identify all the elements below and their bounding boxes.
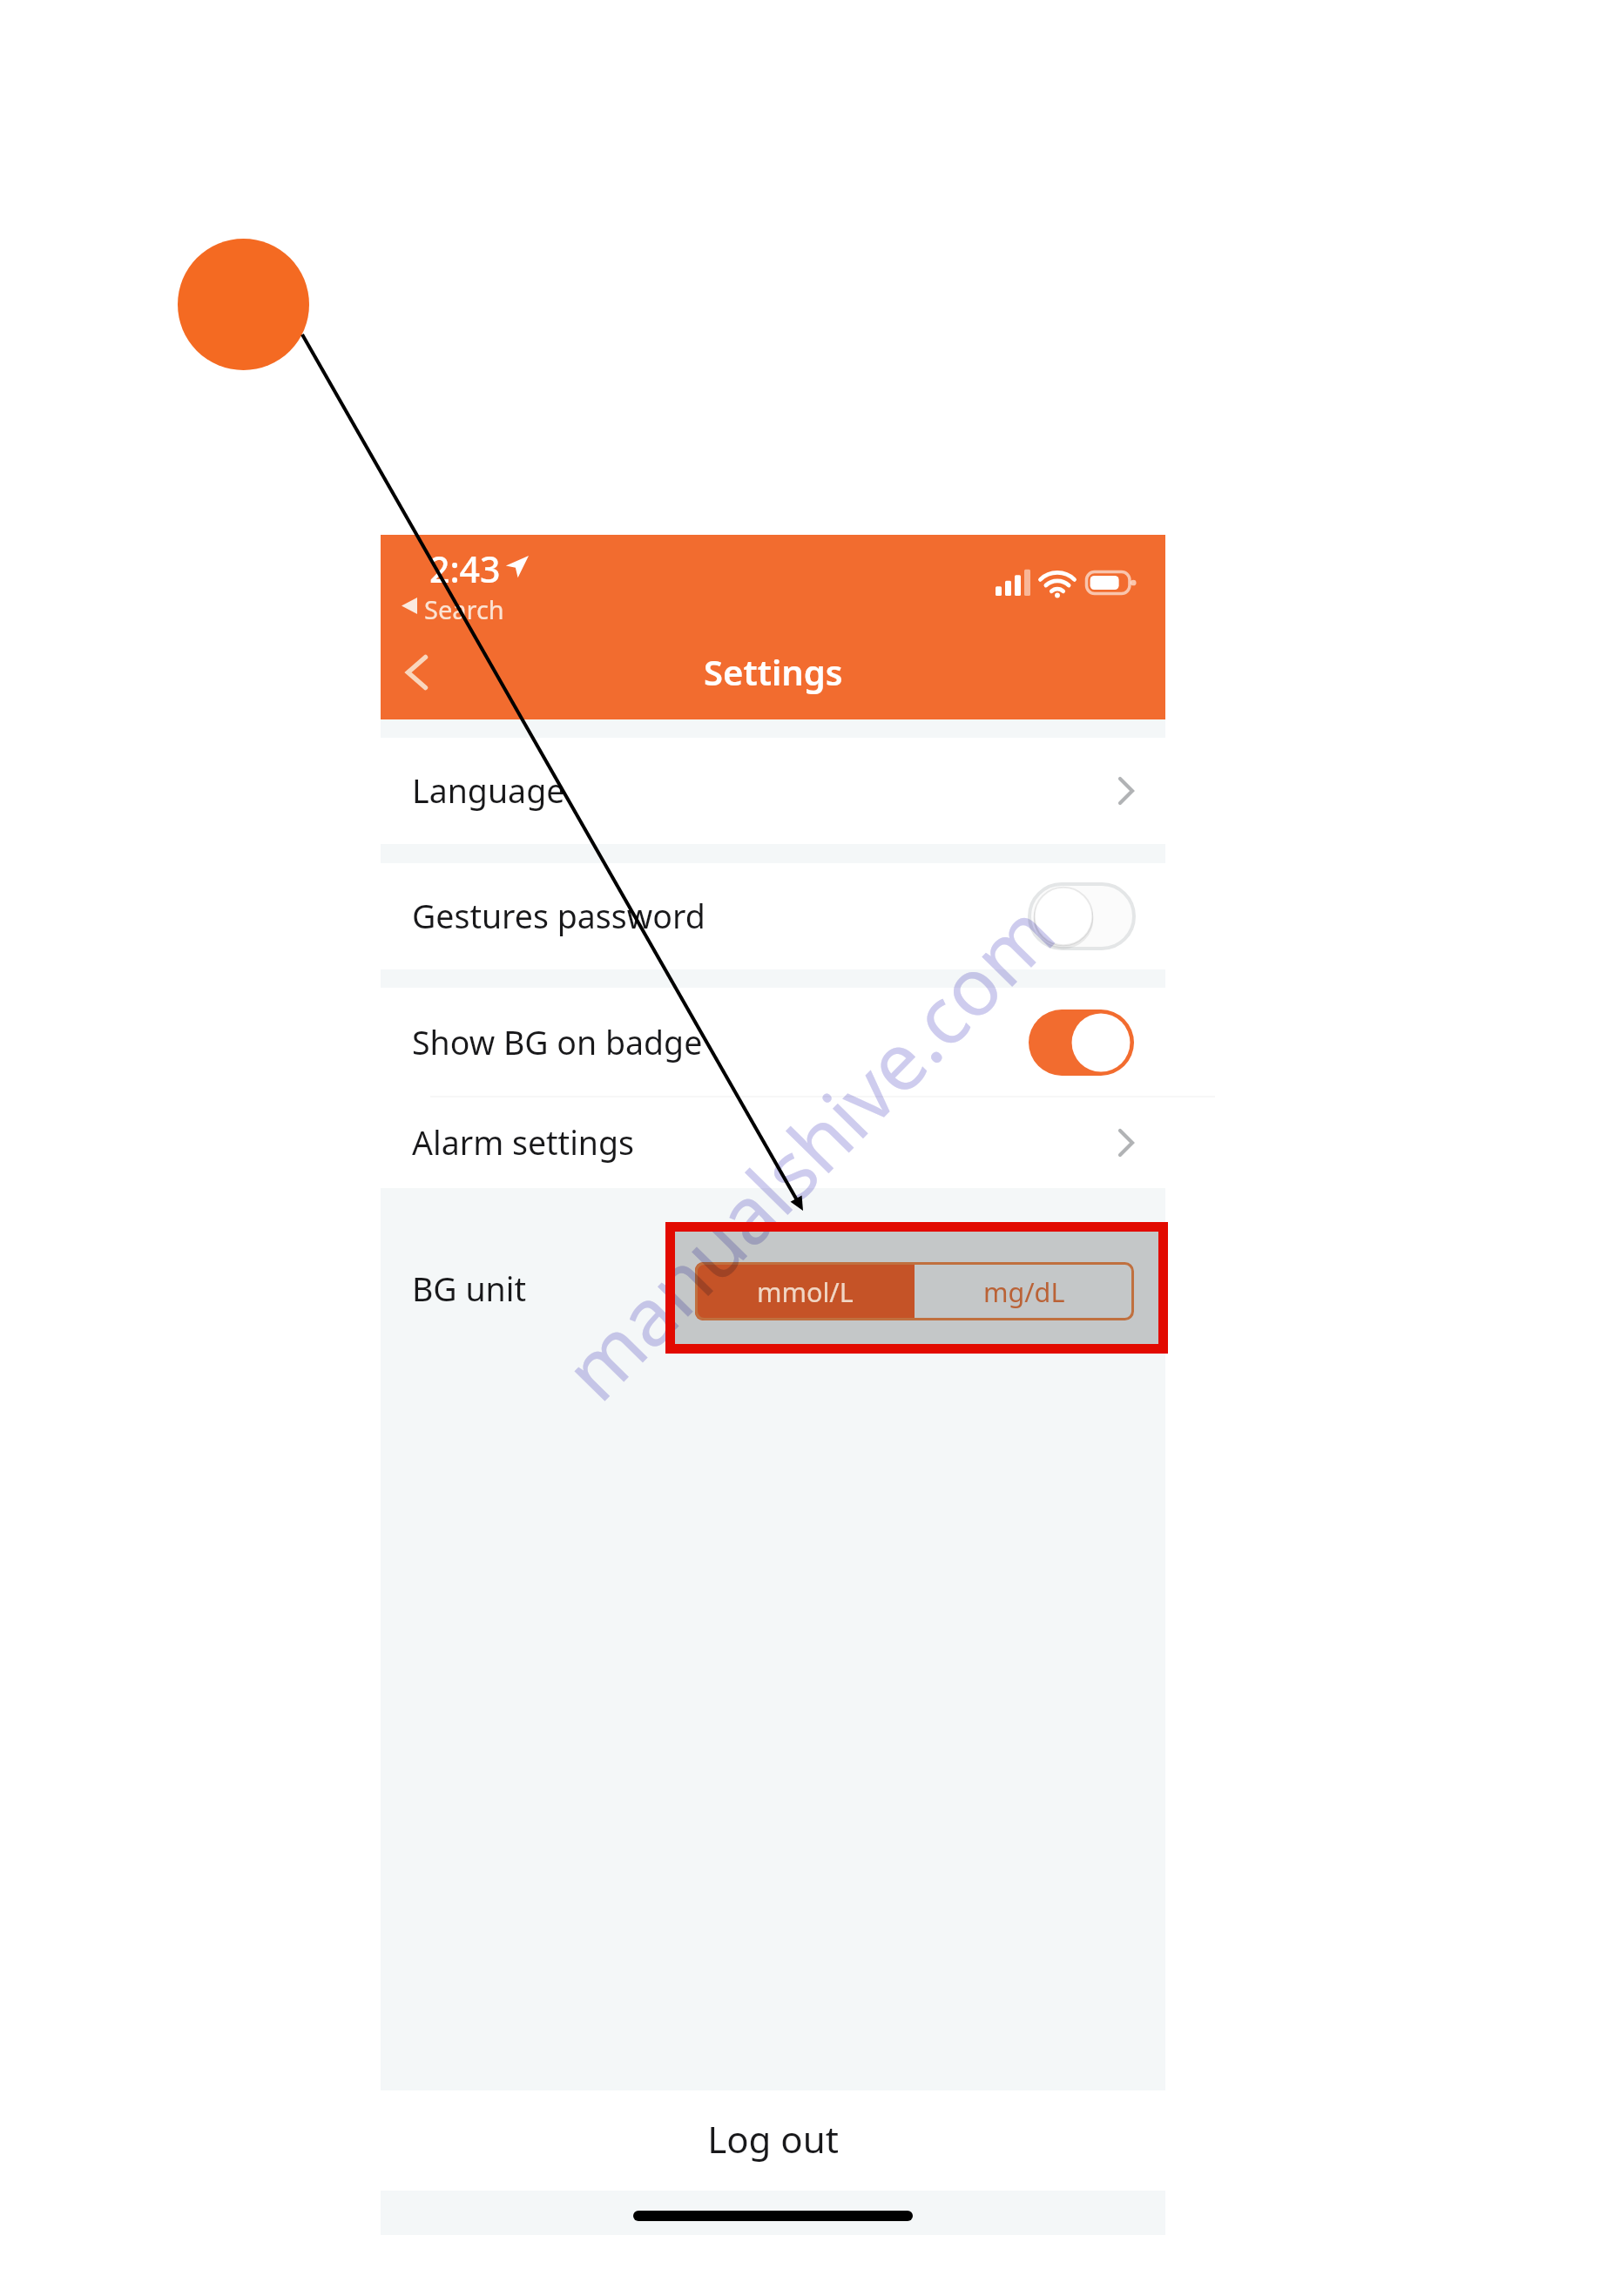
button[interactable]: Gestures password bbox=[381, 863, 1165, 969]
button[interactable]: Show BG on badge on bbox=[1029, 1010, 1134, 1076]
button[interactable]: mmol/L bbox=[695, 1262, 915, 1320]
staticText: Search bbox=[424, 592, 504, 626]
staticText: Log out bbox=[707, 2114, 839, 2164]
staticText: mmol/L bbox=[757, 1273, 854, 1310]
button[interactable]: Log out bbox=[381, 2090, 1165, 2191]
button[interactable]: Show BG on badge bbox=[381, 988, 1165, 1097]
staticText: BG unit bbox=[412, 1266, 526, 1311]
button[interactable]: Language bbox=[381, 738, 1165, 844]
staticText: Gestures password bbox=[412, 894, 705, 938]
staticText: Show BG on badge bbox=[412, 1020, 703, 1064]
button[interactable]: Gestures password off bbox=[1029, 884, 1134, 949]
staticText: Alarm settings bbox=[412, 1120, 635, 1165]
staticText: 2:43 bbox=[429, 544, 501, 593]
button[interactable]: Alarm settings bbox=[381, 1097, 1165, 1188]
button[interactable]: mg/dL bbox=[915, 1262, 1134, 1320]
staticText: Settings bbox=[704, 648, 843, 695]
staticText: Language bbox=[412, 768, 565, 813]
button[interactable]: Back bbox=[389, 641, 443, 704]
staticText: mg/dL bbox=[983, 1273, 1065, 1310]
